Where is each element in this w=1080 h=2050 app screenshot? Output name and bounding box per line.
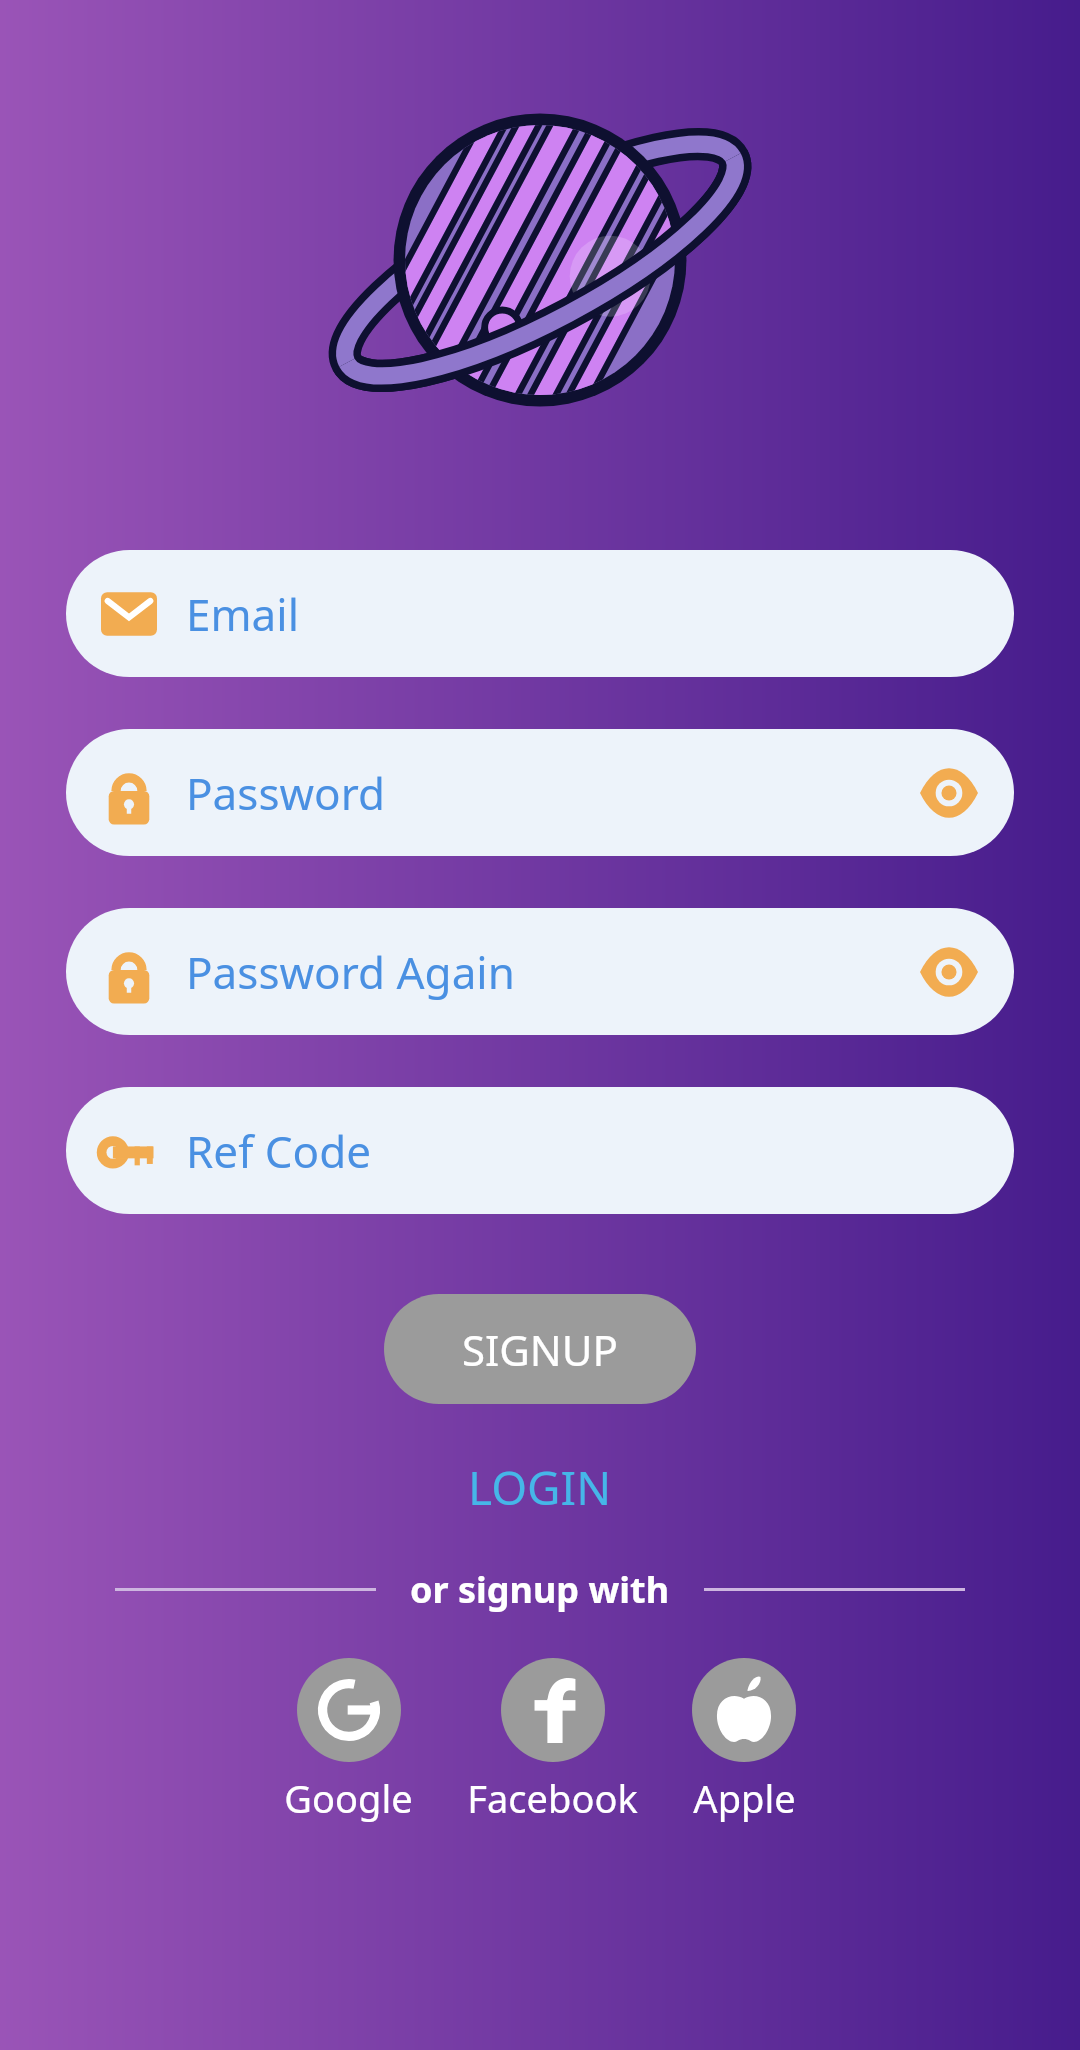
staticText: Google — [284, 1772, 413, 1824]
staticText: or signup with — [410, 1565, 670, 1614]
button[interactable]: Show password — [920, 943, 978, 1001]
staticText: SIGNUP — [462, 1321, 618, 1378]
button[interactable]: Facebook — [457, 1654, 648, 1828]
button[interactable]: Ref Code — [66, 1087, 1014, 1214]
button[interactable]: Apple — [682, 1654, 806, 1828]
staticText: Password Again — [186, 942, 515, 1002]
button[interactable]: Password Again — [66, 908, 1014, 1035]
staticText: Ref Code — [186, 1121, 372, 1181]
staticText: Email — [186, 584, 299, 644]
button[interactable]: Password — [66, 729, 1014, 856]
button[interactable]: Email — [66, 550, 1014, 677]
button[interactable]: Show password — [920, 764, 978, 822]
button[interactable]: LOGIN — [442, 1448, 638, 1527]
staticText: Facebook — [467, 1772, 638, 1824]
staticText: LOGIN — [468, 1456, 612, 1519]
button[interactable]: SIGNUP — [384, 1294, 696, 1404]
staticText: Apple — [693, 1772, 796, 1824]
staticText: Password — [186, 763, 386, 823]
button[interactable]: Google — [274, 1654, 423, 1828]
